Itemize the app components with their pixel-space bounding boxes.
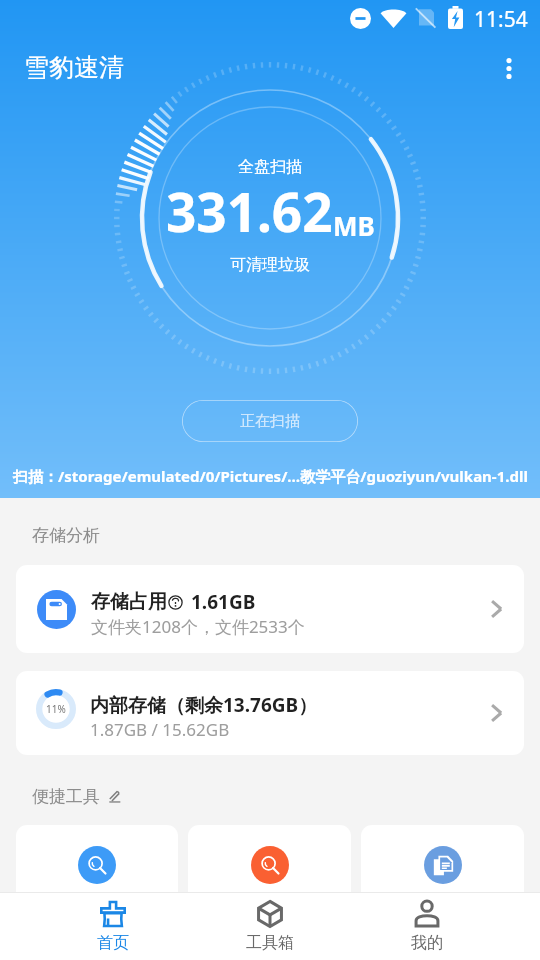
staticText: 扫描：/storage/emulated/0/Pictures/…教学平台/gu…: [13, 466, 528, 486]
button[interactable]: 雪豹速清: [24, 52, 124, 83]
staticText: 首页: [97, 933, 129, 953]
staticText: 工具箱: [246, 933, 294, 953]
button[interactable]: More options: [488, 48, 529, 89]
button[interactable]: 首页: [35, 893, 191, 960]
button[interactable]: Deep scan: [188, 825, 351, 920]
button[interactable]: 存储占用: [16, 565, 524, 653]
staticText: 全盘扫描: [238, 157, 302, 177]
button[interactable]: 工具箱: [191, 893, 348, 960]
staticText: 可清理垃圾: [230, 255, 310, 275]
staticText: 1.87GB / 15.62GB: [90, 718, 230, 741]
staticText: 存储占用: [91, 590, 167, 614]
button[interactable]: Duplicate files: [361, 825, 524, 920]
staticText: 331.62: [166, 175, 333, 247]
staticText: 便捷工具: [32, 786, 100, 807]
button[interactable]: 我的: [348, 893, 505, 960]
button[interactable]: Big file search: [16, 825, 178, 920]
staticText: 1.61GB: [191, 589, 256, 615]
button[interactable]: 正在扫描: [182, 400, 358, 442]
staticText: 11%: [46, 702, 66, 716]
staticText: 文件夹1208个，文件2533个: [91, 615, 305, 638]
button[interactable]: 11%: [16, 671, 524, 755]
staticText: 存储分析: [32, 525, 100, 546]
staticText: MB: [333, 208, 375, 243]
staticText: 内部存储（剩余13.76GB）: [90, 692, 318, 718]
staticText: 正在扫描: [240, 412, 300, 431]
staticText: 我的: [411, 933, 443, 953]
staticText: 11:54: [474, 5, 528, 34]
